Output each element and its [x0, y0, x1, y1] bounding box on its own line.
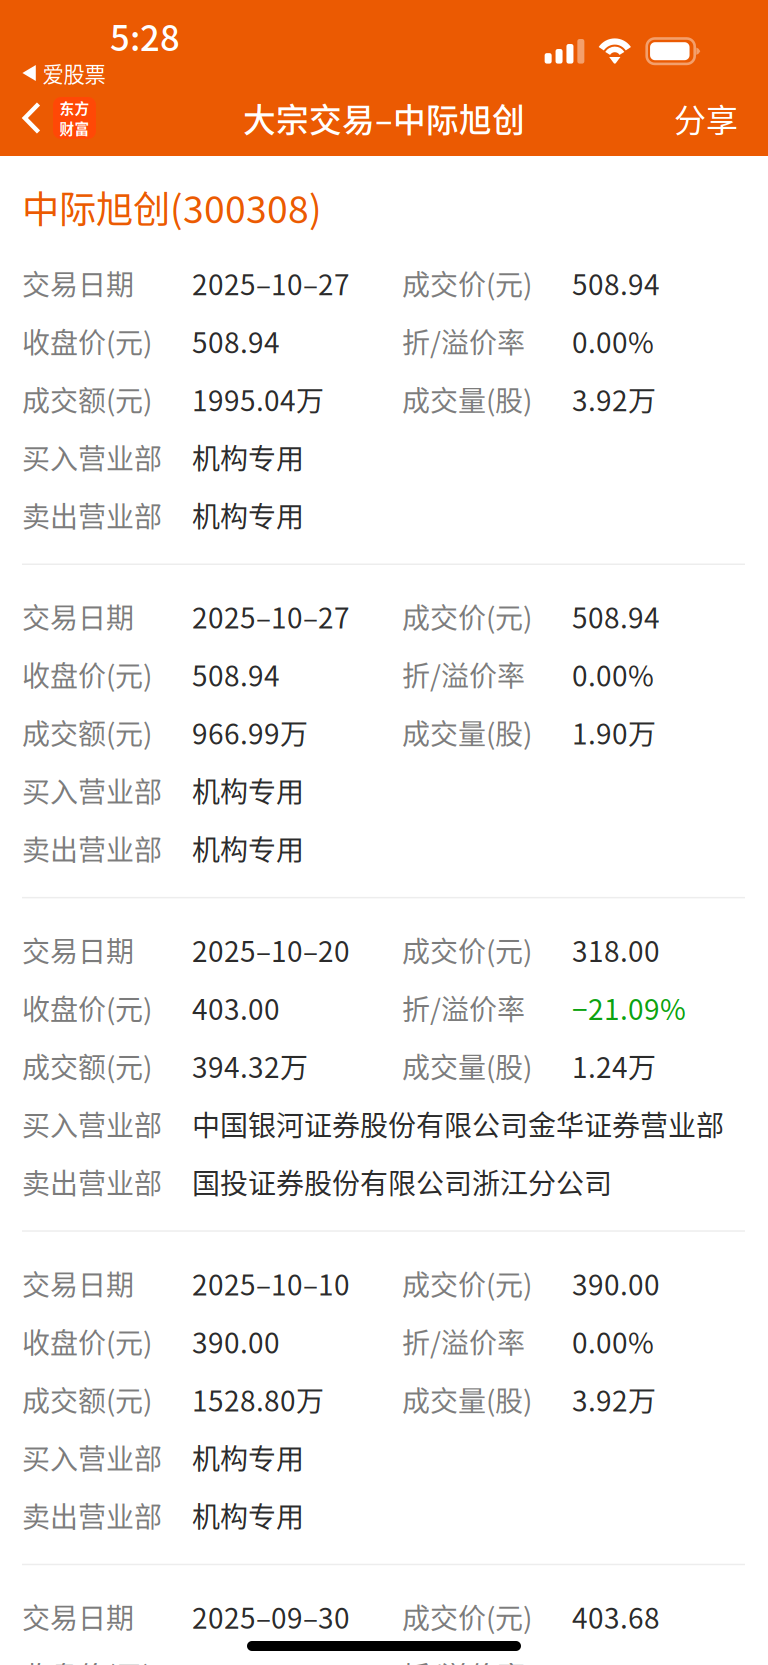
- staticText: 成交量(股): [402, 379, 532, 419]
- staticText: 交易日期: [22, 929, 134, 970]
- staticText: 中国银河证券股份有限公司金华证券营业部: [192, 1103, 724, 1144]
- button[interactable]: 分享: [660, 88, 752, 148]
- staticText: 403.00: [192, 987, 280, 1028]
- staticText: 分享: [674, 95, 738, 141]
- staticText: 2025–09–30: [192, 1596, 350, 1637]
- staticText: 机构专用: [192, 828, 304, 869]
- button[interactable]: 交易日期: [22, 254, 745, 544]
- staticText: 交易日期: [22, 1596, 134, 1637]
- staticText: 机构专用: [192, 495, 304, 535]
- staticText: 成交量(股): [402, 1045, 532, 1086]
- staticText: 成交价(元): [402, 596, 532, 637]
- staticText: 成交价(元): [402, 263, 532, 303]
- staticText: 收盘价(元): [22, 1321, 152, 1361]
- staticText: 交易日期: [22, 263, 134, 303]
- staticText: 卖出营业部: [22, 1495, 162, 1535]
- staticText: 成交额(元): [22, 379, 152, 419]
- staticText: 收盘价(元): [22, 987, 152, 1028]
- staticText: 买入营业部: [22, 1437, 162, 1477]
- staticText: 收盘价(元): [22, 321, 152, 361]
- staticText: 买入营业部: [22, 437, 162, 477]
- staticText: 成交量(股): [402, 1379, 532, 1419]
- staticText: 交易日期: [22, 596, 134, 637]
- staticText: 1528.80万: [192, 1379, 324, 1419]
- staticText: 0.00%: [572, 321, 654, 361]
- staticText: 国投证券股份有限公司浙江分公司: [192, 1161, 612, 1202]
- staticText: 爱股票: [42, 58, 105, 88]
- staticText: 大宗交易–中际旭创: [243, 94, 525, 142]
- staticText: 318.00: [572, 929, 660, 970]
- staticText: 966.99万: [192, 712, 308, 753]
- staticText: 机构专用: [192, 770, 304, 811]
- staticText: 收盘价(元): [22, 654, 152, 695]
- staticText: 卖出营业部: [22, 1161, 162, 1202]
- staticText: 508.94: [572, 263, 660, 303]
- staticText: 卖出营业部: [22, 495, 162, 535]
- staticText: 成交额(元): [22, 1379, 152, 1419]
- button[interactable]: 交易日期: [22, 921, 745, 1211]
- staticText: 508.94: [192, 654, 280, 695]
- staticText: 508.94: [572, 596, 660, 637]
- staticText: 机构专用: [192, 1437, 304, 1477]
- staticText: 2025–10–27: [192, 596, 350, 637]
- staticText: 1.90万: [572, 712, 656, 753]
- staticText: 成交额(元): [22, 1045, 152, 1086]
- staticText: 机构专用: [192, 437, 304, 477]
- button[interactable]: 交易日期: [22, 1588, 745, 1665]
- staticText: 2025–10–27: [192, 263, 350, 303]
- staticText: 3.92万: [572, 1379, 656, 1419]
- staticText: 买入营业部: [22, 1103, 162, 1144]
- staticText: 成交量(股): [402, 712, 532, 753]
- staticText: 买入营业部: [22, 770, 162, 811]
- staticText: 成交额(元): [22, 712, 152, 753]
- staticText: 卖出营业部: [22, 828, 162, 869]
- staticText: 成交价(元): [402, 1263, 532, 1303]
- staticText: 折/溢价率: [402, 654, 525, 695]
- staticText: 交易日期: [22, 1263, 134, 1303]
- staticText: 1.24万: [572, 1045, 656, 1086]
- button[interactable]: 返回爱股票: [0, 60, 115, 86]
- staticText: 折/溢价率: [402, 987, 525, 1028]
- staticText: 390.00: [192, 1321, 280, 1361]
- staticText: 2025–10–20: [192, 929, 350, 970]
- staticText: 1995.04万: [192, 379, 324, 419]
- button[interactable]: 交易日期: [22, 1254, 745, 1544]
- staticText: 0.00%: [572, 654, 654, 695]
- staticText: 折/溢价率: [402, 1654, 525, 1665]
- staticText: 折/溢价率: [402, 1321, 525, 1361]
- staticText: 成交价(元): [402, 1596, 532, 1637]
- button[interactable]: 返回: [0, 88, 108, 148]
- staticText: 0.00%: [572, 1321, 654, 1361]
- staticText: 390.00: [572, 1263, 660, 1303]
- staticText: 3.92万: [572, 379, 656, 419]
- staticText: 机构专用: [192, 1495, 304, 1535]
- staticText: 财富: [59, 117, 89, 139]
- staticText: 403.68: [572, 1596, 660, 1637]
- button[interactable]: 交易日期: [22, 587, 745, 877]
- button[interactable]: 中际旭创(300308): [22, 156, 322, 254]
- staticText: 5:28: [110, 11, 180, 61]
- staticText: 394.32万: [192, 1045, 308, 1086]
- staticText: 东方: [59, 97, 89, 118]
- staticText: 折/溢价率: [402, 321, 525, 361]
- staticText: −21.09%: [572, 987, 686, 1028]
- staticText: 中际旭创(300308): [22, 180, 322, 234]
- staticText: 收盘价(元): [22, 1654, 152, 1665]
- staticText: 2025–10–10: [192, 1263, 350, 1303]
- staticText: 508.94: [192, 321, 280, 361]
- staticText: 成交价(元): [402, 929, 532, 970]
